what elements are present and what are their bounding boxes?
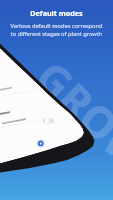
staticText: Default modes <box>30 8 83 18</box>
staticText: Various default modes correspond to diff… <box>10 22 103 38</box>
